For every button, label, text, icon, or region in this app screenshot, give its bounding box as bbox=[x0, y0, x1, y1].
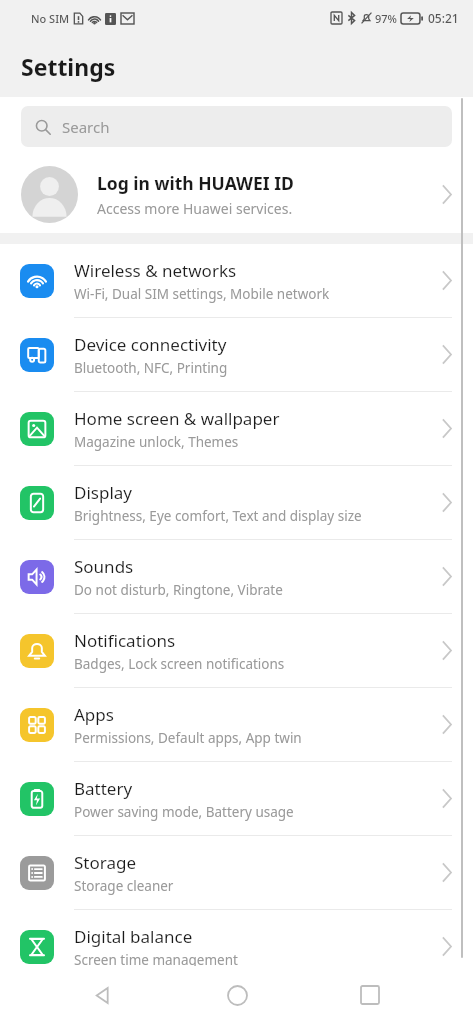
button[interactable]: Storage bbox=[0, 836, 473, 909]
button[interactable]: Display bbox=[0, 466, 473, 539]
staticText: Brightness, Eye comfort, Text and displa… bbox=[74, 507, 362, 525]
staticText: Wireless & networks bbox=[74, 259, 237, 282]
button[interactable]: Home screen & wallpaper bbox=[0, 392, 473, 465]
staticText: Battery bbox=[74, 777, 133, 800]
staticText: Device connectivity bbox=[74, 333, 227, 356]
staticText: Display bbox=[74, 481, 132, 504]
staticText: Screen time management bbox=[74, 951, 238, 969]
staticText: Home screen & wallpaper bbox=[74, 407, 280, 430]
button[interactable]: Recents bbox=[339, 966, 401, 1024]
staticText: Log in with HUAWEI ID bbox=[97, 171, 294, 195]
staticText: Apps bbox=[74, 703, 114, 726]
button[interactable]: Back bbox=[72, 966, 134, 1024]
staticText: Do not disturb, Ringtone, Vibrate bbox=[74, 581, 283, 599]
staticText: 97% bbox=[375, 11, 397, 26]
button[interactable]: Notifications bbox=[0, 614, 473, 687]
button[interactable]: Apps bbox=[0, 688, 473, 761]
staticText: Magazine unlock, Themes bbox=[74, 433, 239, 451]
staticText: Access more Huawei services. bbox=[97, 199, 293, 218]
button[interactable]: Search bbox=[21, 106, 452, 147]
button[interactable]: Sounds bbox=[0, 540, 473, 613]
staticText: Sounds bbox=[74, 555, 134, 578]
staticText: Bluetooth, NFC, Printing bbox=[74, 359, 228, 377]
button[interactable]: Device connectivity bbox=[0, 318, 473, 391]
button[interactable]: Wireless & networks bbox=[0, 244, 473, 317]
staticText: Power saving mode, Battery usage bbox=[74, 803, 294, 821]
staticText: No SIM bbox=[31, 11, 70, 26]
staticText: Storage cleaner bbox=[74, 877, 174, 895]
button[interactable]: Battery bbox=[0, 762, 473, 835]
staticText: Search bbox=[62, 117, 110, 137]
staticText: Settings bbox=[21, 51, 116, 82]
staticText: 05:21 bbox=[428, 10, 459, 26]
staticText: Wi-Fi, Dual SIM settings, Mobile network bbox=[74, 285, 330, 303]
staticText: Notifications bbox=[74, 629, 176, 652]
button[interactable]: Digital balance bbox=[0, 910, 473, 983]
staticText: Permissions, Default apps, App twin bbox=[74, 729, 302, 747]
button[interactable]: Home bbox=[206, 966, 268, 1024]
button[interactable]: Log in with HUAWEI ID bbox=[0, 155, 473, 233]
staticText: Storage bbox=[74, 851, 137, 874]
staticText: Digital balance bbox=[74, 925, 193, 948]
staticText: Badges, Lock screen notifications bbox=[74, 655, 285, 673]
